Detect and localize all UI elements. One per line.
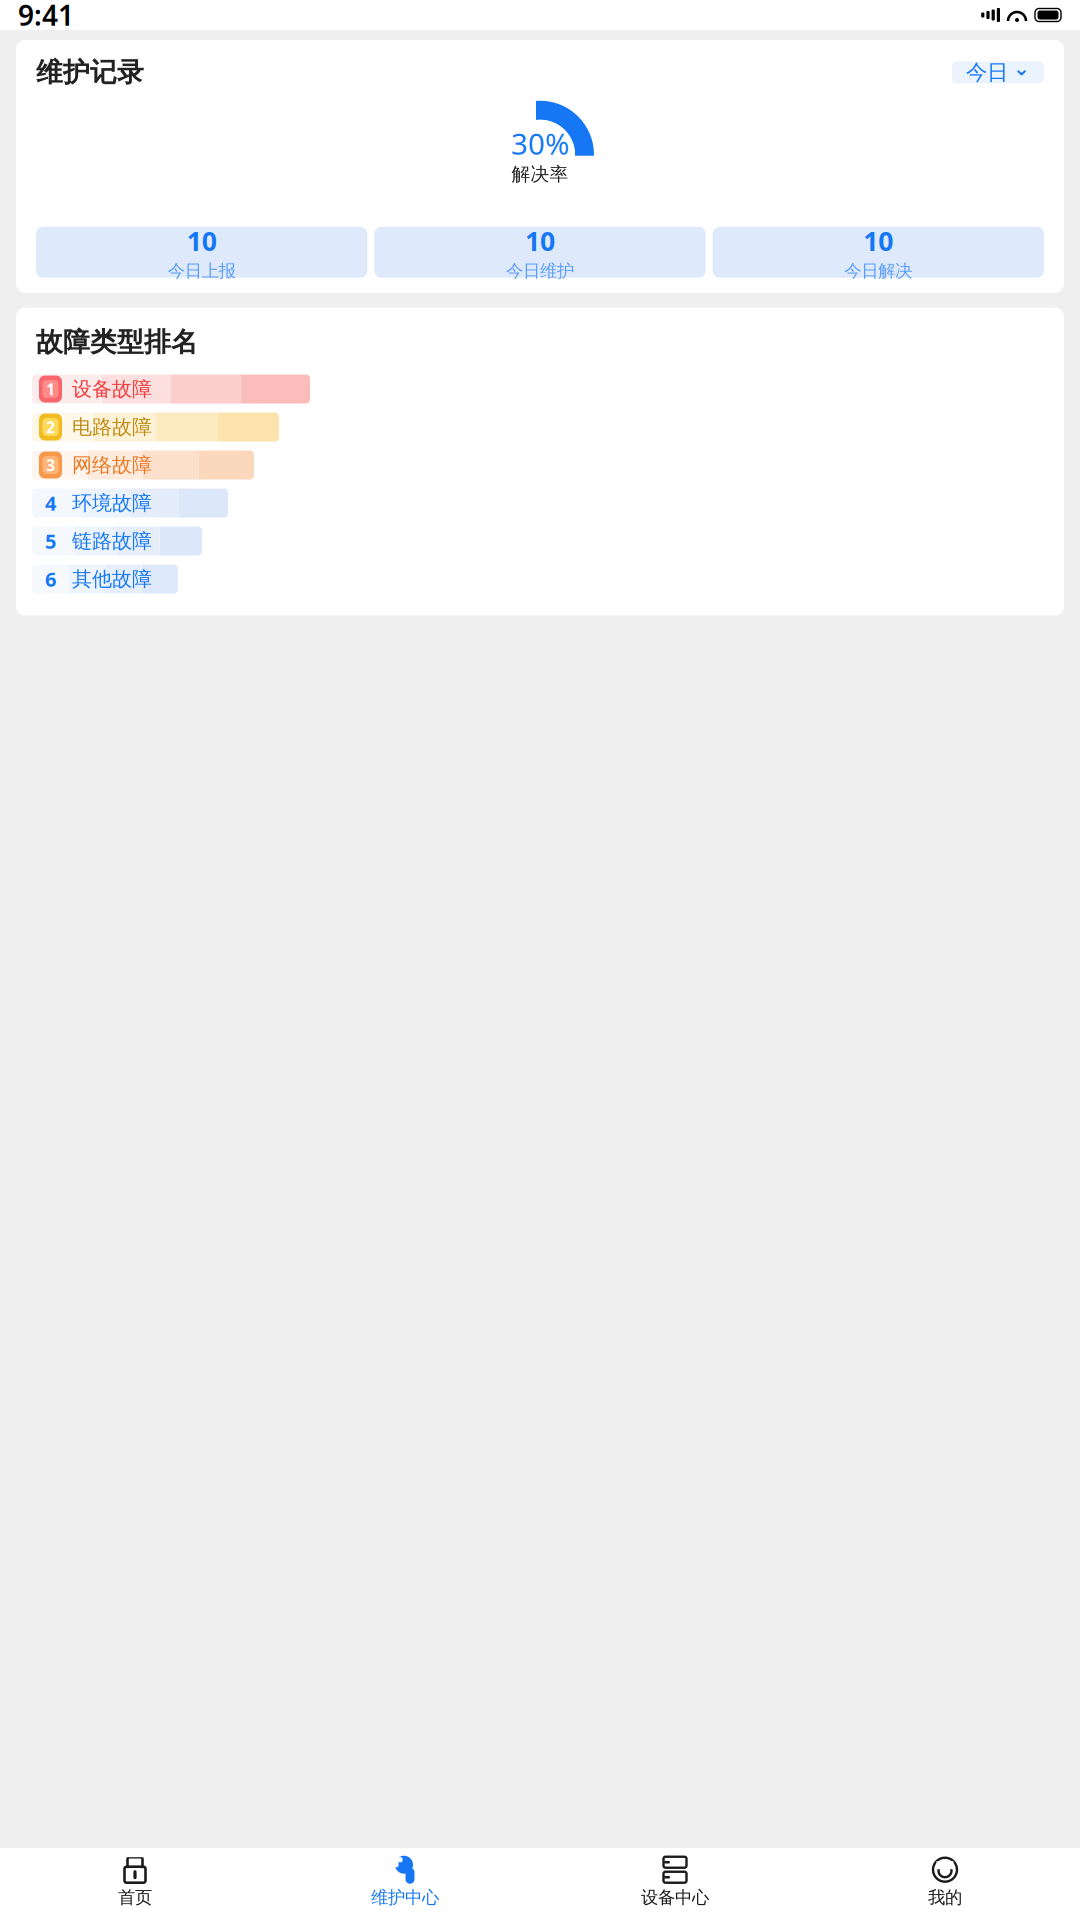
staticText: 其他故障 <box>72 567 152 591</box>
staticText: 2 <box>46 416 55 438</box>
button[interactable]: 今日 <box>952 61 1044 83</box>
staticText: 环境故障 <box>72 491 152 515</box>
staticText: 我的 <box>928 1887 962 1908</box>
staticText: 30% <box>511 124 569 163</box>
staticText: 解决率 <box>511 163 568 186</box>
staticText: 链路故障 <box>72 529 152 553</box>
button[interactable]: 设备中心 <box>540 1848 810 1920</box>
button[interactable]: 6 <box>32 564 1048 593</box>
staticText: 网络故障 <box>72 453 152 477</box>
button[interactable]: 我的 <box>810 1848 1080 1920</box>
staticText: 维护中心 <box>371 1887 439 1908</box>
staticText: 设备故障 <box>72 377 152 401</box>
staticText: 今日解决 <box>844 260 912 282</box>
staticText: 电路故障 <box>72 415 152 439</box>
button[interactable]: 5 <box>32 526 1048 555</box>
staticText: 维护记录 <box>36 56 144 89</box>
staticText: 故障类型排名 <box>36 326 198 359</box>
staticText: 今日维护 <box>506 260 574 282</box>
staticText: 4 <box>45 490 56 516</box>
staticText: 10 <box>525 223 555 258</box>
button[interactable]: 2 <box>32 412 1048 441</box>
button[interactable]: 10 <box>374 227 706 278</box>
staticText: 今日 <box>966 59 1008 85</box>
staticText: 5 <box>45 528 56 554</box>
button[interactable]: 10 <box>713 227 1044 278</box>
staticText: 首页 <box>118 1887 152 1908</box>
staticText: 6 <box>45 566 56 592</box>
staticText: 10 <box>863 223 893 258</box>
staticText: 3 <box>46 454 55 476</box>
button[interactable]: 3 <box>32 450 1048 479</box>
button[interactable]: 首页 <box>0 1848 270 1920</box>
button[interactable]: 1 <box>32 374 1048 403</box>
button[interactable]: 10 <box>36 227 367 278</box>
staticText: 9:41 <box>18 0 74 34</box>
staticText: 设备中心 <box>641 1887 709 1908</box>
staticText: 1 <box>46 378 55 400</box>
button[interactable]: 4 <box>32 488 1048 517</box>
staticText: ⌄ <box>1013 57 1030 80</box>
staticText: 10 <box>187 223 217 258</box>
button[interactable]: 维护中心 <box>270 1848 540 1920</box>
staticText: 今日上报 <box>168 260 236 282</box>
